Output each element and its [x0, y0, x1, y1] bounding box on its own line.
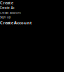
staticText: Create — [0, 0, 13, 5]
staticText: Create Account — [0, 11, 21, 14]
staticText: Create Account — [0, 20, 32, 25]
staticText: Create Ac — [0, 6, 14, 10]
staticText: Sign up — [0, 15, 11, 19]
